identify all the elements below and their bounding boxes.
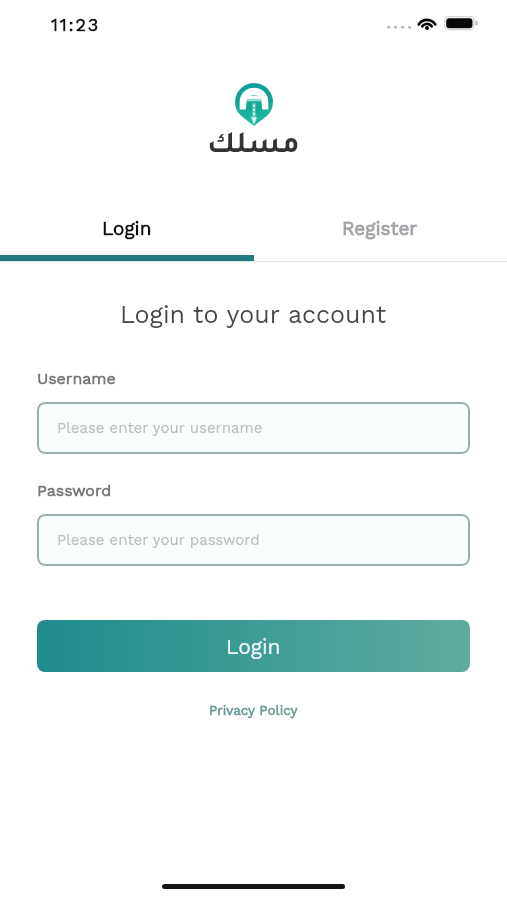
- staticText: مسلك: [207, 132, 300, 163]
- other: Wi-Fi: [417, 17, 437, 30]
- staticText: Password: [37, 481, 112, 500]
- staticText: Username: [37, 369, 116, 388]
- staticText: Register: [342, 217, 418, 239]
- button[interactable]: Please enter your password: [37, 514, 470, 566]
- staticText: Login: [226, 634, 281, 659]
- staticText: Please enter your password: [57, 531, 260, 549]
- staticText: Privacy Policy: [209, 702, 298, 718]
- other: Battery: [444, 16, 477, 30]
- button[interactable]: Login: [0, 204, 253, 255]
- button[interactable]: Privacy Policy: [203, 699, 304, 721]
- button[interactable]: Register: [253, 204, 507, 255]
- other: Cellular signal: [387, 26, 410, 30]
- staticText: Please enter your username: [57, 419, 263, 437]
- button[interactable]: Login: [37, 620, 470, 672]
- staticText: Login: [102, 217, 152, 239]
- staticText: 11:23: [51, 14, 100, 35]
- staticText: Login to your account: [120, 300, 387, 329]
- button[interactable]: Please enter your username: [37, 402, 470, 454]
